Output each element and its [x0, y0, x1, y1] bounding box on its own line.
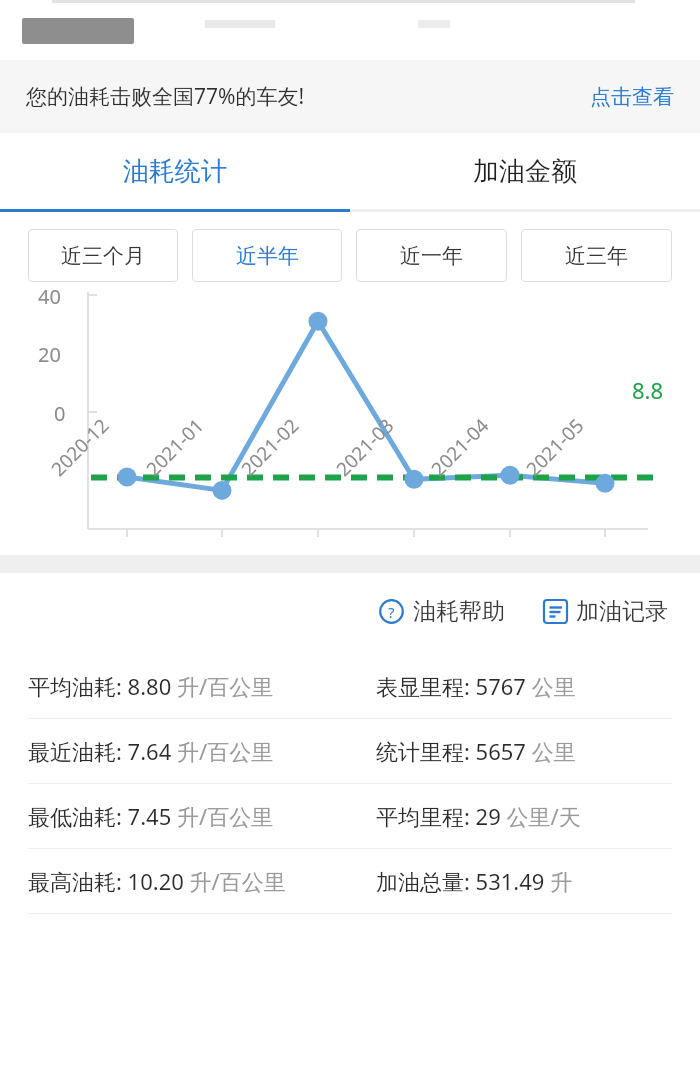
staticText: 最低油耗: 7.45 升/百公里 — [28, 801, 274, 831]
staticText: 20 — [38, 341, 61, 368]
button[interactable]: 加油记录 — [537, 591, 674, 632]
staticText: 最高油耗: 10.20 升/百公里 — [28, 866, 286, 896]
button[interactable]: 油耗帮助 — [373, 591, 511, 632]
staticText: 平均里程: 29 公里/天 — [376, 801, 581, 831]
staticText: 近半年 — [236, 243, 299, 269]
staticText: 最近油耗: 7.64 升/百公里 — [28, 736, 274, 766]
staticText: 2021-05 — [520, 412, 590, 482]
staticText: 表显里程: 5767 公里 — [376, 671, 576, 701]
staticText: ? — [388, 602, 395, 622]
staticText: 点击查看 — [590, 84, 674, 110]
button[interactable]: 近三年 — [521, 229, 672, 282]
button[interactable]: 近半年 — [192, 229, 342, 282]
staticText: 近一年 — [400, 243, 463, 269]
staticText: 近三年 — [565, 243, 628, 269]
staticText: 40 — [38, 283, 61, 310]
staticText: 加油金额 — [473, 155, 577, 188]
staticText: 2021-01 — [140, 412, 210, 482]
staticText: 2021-03 — [330, 412, 400, 482]
staticText: 平均油耗: 8.80 升/百公里 — [28, 671, 274, 701]
button[interactable]: 加油金额 — [350, 133, 700, 209]
staticText: 2021-02 — [235, 412, 305, 482]
other: 油耗帮助 — [379, 599, 404, 624]
staticText: 加油记录 — [576, 597, 668, 626]
staticText: 0 — [54, 400, 66, 427]
button[interactable]: 近一年 — [356, 229, 507, 282]
staticText: 2021-04 — [425, 412, 495, 482]
staticText: 油耗帮助 — [413, 597, 505, 626]
staticText: 统计里程: 5657 公里 — [376, 736, 576, 766]
staticText: 加油总量: 531.49 升 — [376, 866, 573, 896]
button[interactable]: 油耗统计 — [0, 133, 350, 209]
other: 加油记录 — [543, 599, 568, 624]
staticText: 油耗统计 — [123, 155, 227, 188]
staticText: 您的油耗击败全国77%的车友! — [26, 82, 305, 111]
staticText: 8.8 — [632, 375, 664, 405]
button[interactable]: 您的油耗击败全国77%的车友! — [0, 60, 700, 133]
staticText: 近三个月 — [61, 243, 145, 269]
staticText: 2020-12 — [45, 412, 115, 482]
button[interactable]: 近三个月 — [28, 229, 178, 282]
